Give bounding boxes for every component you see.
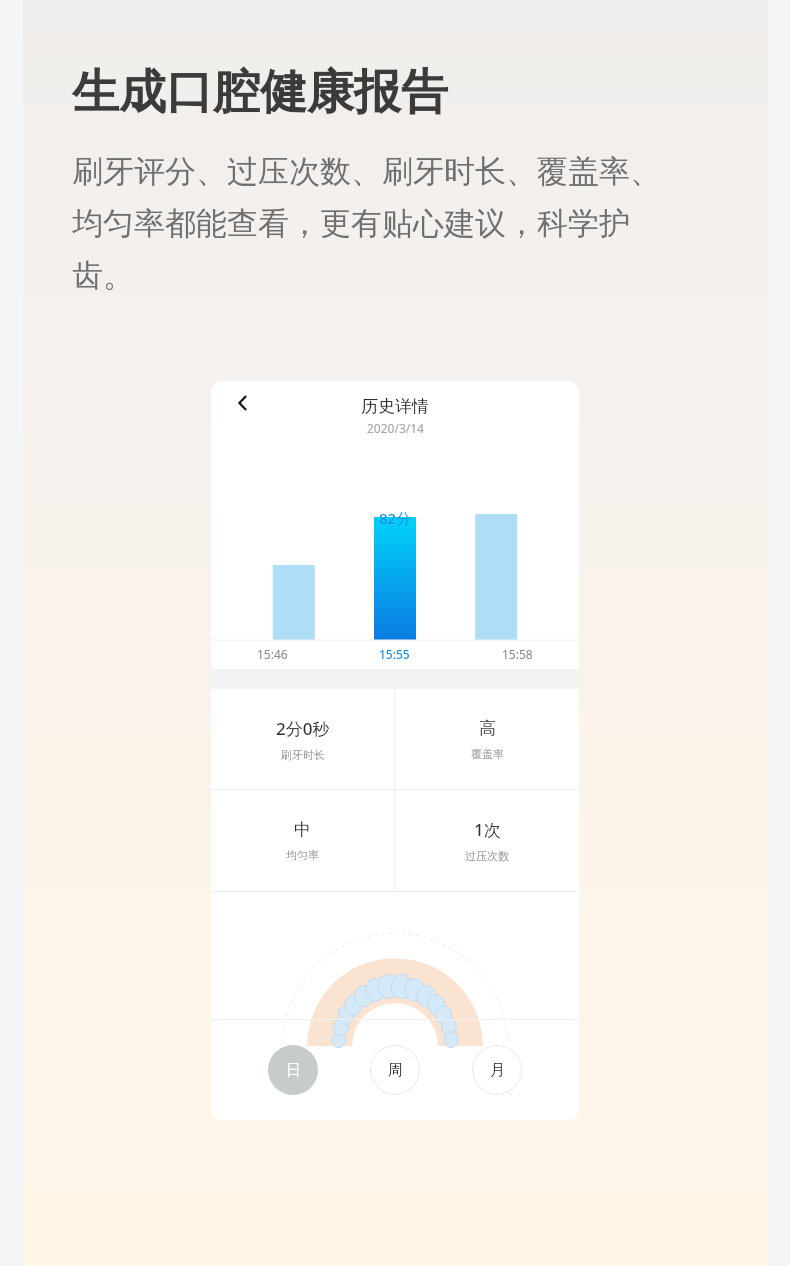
staticText: 覆盖率 <box>471 747 504 761</box>
staticText: 高 <box>479 718 496 739</box>
staticText: 周 <box>388 1061 403 1080</box>
staticText: 82分 <box>379 508 412 528</box>
staticText: 中 <box>294 819 311 840</box>
button[interactable]: Back <box>221 381 265 425</box>
staticText: 15:58 <box>502 646 533 662</box>
button[interactable]: 15:55 <box>333 646 456 662</box>
staticText: 过压次数 <box>465 849 509 863</box>
staticText: 2020/3/14 <box>367 420 424 436</box>
staticText: 15:55 <box>379 646 410 662</box>
button[interactable]: 高 <box>395 689 579 789</box>
staticText: 生成口腔健康报告 <box>72 63 448 122</box>
button[interactable]: 15:46 <box>211 646 333 662</box>
staticText: 均匀率 <box>286 848 319 862</box>
button[interactable]: 15:58 <box>456 646 579 662</box>
staticText: 刷牙评分、过压次数、刷牙时长、覆盖率、均匀率都能查看，更有贴心建议，科学护齿。 <box>72 152 690 295</box>
button[interactable]: 中 <box>211 790 394 891</box>
button[interactable]: 月 <box>472 1045 522 1095</box>
button[interactable]: 日 <box>268 1045 318 1095</box>
button[interactable]: 2分0秒 <box>211 689 394 789</box>
staticText: 1次 <box>474 818 501 841</box>
staticText: 15:46 <box>257 646 288 662</box>
button[interactable]: 周 <box>370 1045 420 1095</box>
staticText: 历史详情 <box>361 396 429 417</box>
staticText: 刷牙时长 <box>281 748 325 762</box>
button[interactable]: 1次 <box>395 790 579 891</box>
staticText: 2分0秒 <box>276 717 330 740</box>
staticText: 日 <box>286 1061 301 1080</box>
staticText: 月 <box>490 1061 505 1080</box>
